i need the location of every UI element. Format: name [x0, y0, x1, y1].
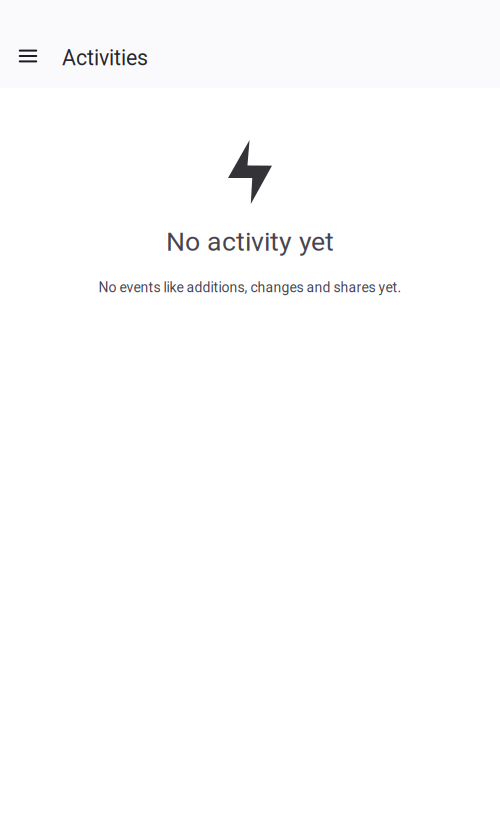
staticText: No activity yet	[166, 226, 334, 257]
staticText: No events like additions, changes and sh…	[98, 279, 401, 296]
button[interactable]: Open navigation menu	[5, 33, 51, 79]
staticText: Activities	[62, 45, 148, 70]
